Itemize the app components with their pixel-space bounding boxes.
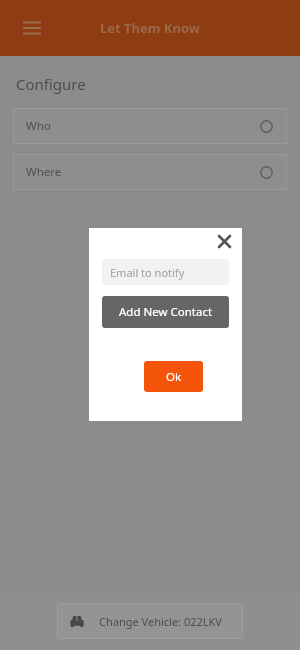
- staticText: Change Vehicle: 022LKV: [99, 614, 222, 629]
- button[interactable]: Who: [13, 108, 287, 144]
- staticText: Add New Contact: [119, 304, 213, 320]
- staticText: Where: [26, 164, 62, 180]
- button[interactable]: Add New Contact: [102, 296, 229, 328]
- staticText: Let Them Know: [100, 19, 200, 37]
- button[interactable]: Open navigation menu: [14, 10, 50, 46]
- staticText: Email to notify: [110, 265, 185, 280]
- button[interactable]: Where: [13, 154, 287, 190]
- staticText: Configure: [16, 74, 86, 94]
- button[interactable]: Change Vehicle: 022LKV: [57, 603, 243, 639]
- button[interactable]: Email to notify: [102, 259, 229, 285]
- staticText: Ok: [166, 369, 182, 385]
- staticText: Who: [26, 118, 51, 134]
- button[interactable]: Ok: [144, 361, 203, 392]
- button[interactable]: Close dialog: [212, 229, 236, 253]
